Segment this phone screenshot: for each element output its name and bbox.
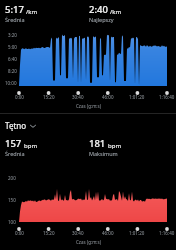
- staticText: 0:00: [15, 230, 24, 236]
- staticText: 200: [8, 175, 16, 181]
- staticText: 46:00: [102, 94, 114, 100]
- staticText: 150: [8, 197, 16, 203]
- staticText: Czas (g:m:s): [76, 239, 102, 245]
- staticText: 100: [8, 219, 16, 225]
- staticText: 1:01:20: [129, 230, 145, 236]
- staticText: bpm: [108, 142, 121, 150]
- staticText: 6:40: [8, 56, 17, 62]
- staticText: Czas (g:m:s): [76, 103, 102, 109]
- staticText: Średnia: [5, 150, 25, 157]
- staticText: 2:40: [89, 3, 108, 16]
- staticText: 1:16:40: [159, 94, 175, 100]
- staticText: 5:17: [5, 3, 24, 16]
- staticText: 1:01:20: [129, 94, 145, 100]
- staticText: 181: [89, 137, 106, 150]
- staticText: Średnia: [5, 16, 25, 23]
- staticText: 30:40: [72, 94, 84, 100]
- staticText: 1:16:40: [159, 230, 175, 236]
- other: Expand: [30, 123, 36, 129]
- staticText: Najlepszy: [89, 16, 114, 23]
- staticText: 0:00: [15, 94, 24, 100]
- staticText: 8:20: [8, 68, 17, 74]
- staticText: 46:00: [102, 230, 114, 236]
- staticText: 15:20: [43, 230, 55, 236]
- staticText: 157: [5, 137, 22, 150]
- staticText: 10:00: [5, 80, 17, 86]
- staticText: 3:20: [8, 32, 17, 38]
- staticText: 5:00: [8, 44, 17, 50]
- staticText: 30:40: [72, 230, 84, 236]
- staticText: Maksimum: [89, 150, 118, 157]
- staticText: /km: [110, 8, 122, 16]
- staticText: 15:20: [43, 94, 55, 100]
- staticText: bpm: [24, 142, 37, 150]
- button[interactable]: Tętno: [5, 120, 36, 131]
- staticText: Tętno: [5, 120, 27, 131]
- staticText: /km: [26, 8, 38, 16]
